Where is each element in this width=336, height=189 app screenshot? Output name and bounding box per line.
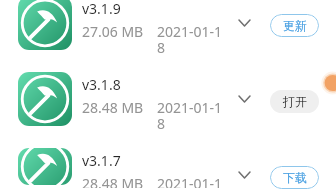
staticText: 27.06 MB [82,22,144,41]
staticText: 下载 [283,170,307,185]
button[interactable]: v3.1.9 [0,0,336,71]
button[interactable]: Expand details [232,87,256,111]
button[interactable]: v3.1.8 [0,71,336,147]
staticText: 2021-01-18 [157,22,223,57]
button[interactable]: 下载 [270,166,319,189]
staticText: 28.48 MB [82,174,144,188]
staticText: v3.1.7 [82,151,121,170]
button[interactable]: Expand details [232,163,256,187]
staticText: 28.48 MB [82,98,144,117]
staticText: 2021-01-18 [157,98,223,133]
staticText: 2021-01-18 [157,174,223,188]
button[interactable]: Expand details [232,11,256,35]
button[interactable]: v3.1.7 [0,147,336,184]
staticText: v3.1.9 [82,0,121,18]
button[interactable]: 更新 [270,14,319,37]
staticText: 打开 [283,94,307,109]
button[interactable]: 打开 [270,90,319,113]
staticText: v3.1.8 [82,75,121,94]
staticText: 更新 [283,18,307,33]
button[interactable]: Quick action [318,68,336,98]
